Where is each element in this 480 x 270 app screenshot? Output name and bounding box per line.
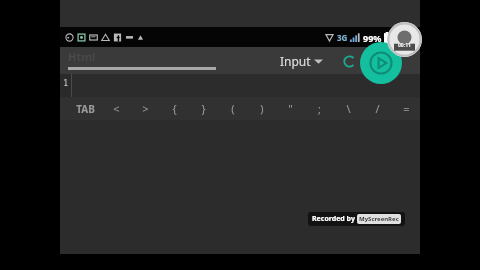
staticText: Recorded by [312,214,357,224]
button[interactable]: Html [68,49,96,64]
button[interactable]: / [363,97,392,120]
button[interactable]: Screen recorder [387,22,422,57]
staticText: } [201,101,206,116]
button[interactable]: ( [218,97,247,120]
button[interactable]: \ [334,97,363,120]
button[interactable]: } [189,97,218,120]
staticText: ( [231,101,235,116]
staticText: 00:11 [398,42,411,49]
button[interactable]: Undo [338,50,360,72]
button[interactable]: Run [360,42,402,84]
button[interactable] [72,74,420,97]
button[interactable]: Input [278,53,325,69]
staticText: ; [318,101,321,116]
button[interactable]: ; [305,97,334,120]
staticText: TAB [76,102,95,116]
staticText: 1 [63,76,69,88]
button[interactable]: Redo [366,50,388,72]
staticText: = [403,101,410,116]
staticText: Input [280,53,311,69]
button[interactable]: TAB [68,97,102,120]
staticText: { [172,101,177,116]
staticText: ) [260,101,264,116]
staticText: 99% [363,32,382,44]
staticText: 3G [337,32,348,43]
staticText: 7:42 [393,30,415,45]
staticText: < [113,101,120,116]
button[interactable]: { [160,97,189,120]
staticText: > [142,101,149,116]
button[interactable]: = [392,97,420,120]
button[interactable]: > [131,97,160,120]
button[interactable]: ) [247,97,276,120]
button[interactable]: < [102,97,131,120]
button[interactable]: " [276,97,305,120]
staticText: MyScreenRec [359,215,399,223]
staticText: " [288,101,293,116]
staticText: \ [346,101,351,116]
staticText: / [375,101,380,116]
